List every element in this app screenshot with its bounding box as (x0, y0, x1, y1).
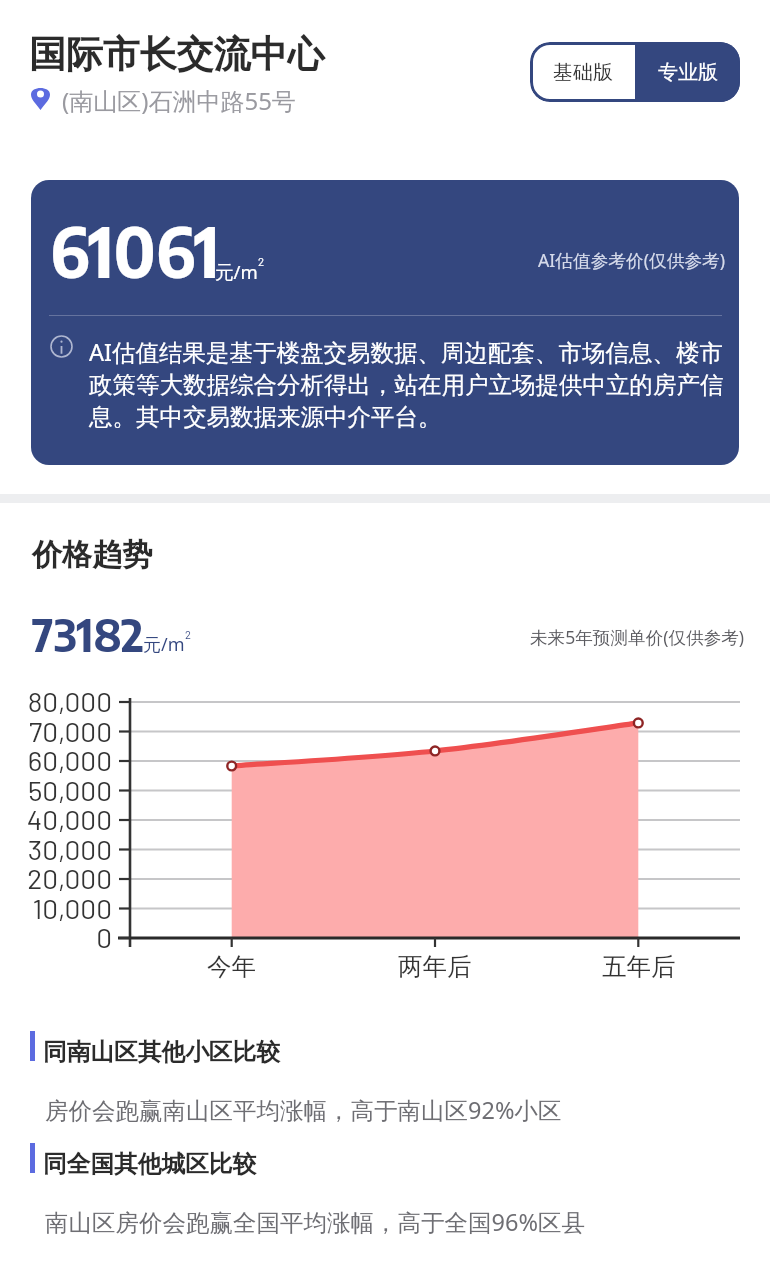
staticText: 未来5年预测单价(仅供参考) (530, 625, 745, 649)
staticText: 80,000 (0, 684, 112, 718)
staticText: 基础版 (553, 60, 613, 85)
staticText: 70,000 (0, 714, 112, 748)
staticText: 同全国其他城区比较 (43, 1149, 257, 1179)
staticText: 2 (258, 255, 265, 269)
staticText: 元/m (215, 259, 258, 284)
staticText: 40,000 (0, 802, 112, 836)
staticText: 10,000 (0, 891, 112, 925)
staticText: 价格趋势 (32, 536, 152, 574)
staticText: 南山区房价会跑赢全国平均涨幅，高于全国96%区县 (45, 1206, 585, 1238)
staticText: 60,000 (0, 743, 112, 777)
staticText: AI估值参考价(仅供参考) (538, 248, 726, 272)
staticText: 五年后 (602, 951, 676, 982)
staticText: 两年后 (398, 951, 472, 982)
staticText: AI估值结果是基于楼盘交易数据、周边配套、市场信息、楼市政策等大数据综合分析得出… (89, 336, 739, 432)
staticText: 20,000 (0, 861, 112, 895)
staticText: 元/m (143, 632, 185, 657)
button[interactable]: 专业版 (635, 42, 740, 102)
staticText: 61061 (50, 208, 220, 292)
staticText: 50,000 (0, 773, 112, 807)
staticText: 同南山区其他小区比较 (43, 1037, 280, 1067)
staticText: 房价会跑赢南山区平均涨幅，高于南山区92%小区 (45, 1094, 562, 1126)
staticText: 30,000 (0, 832, 112, 866)
staticText: 今年 (207, 951, 256, 982)
staticText: 国际市长交流中心 (29, 31, 325, 77)
staticText: 0 (0, 920, 112, 954)
staticText: 73182 (32, 606, 144, 662)
staticText: 2 (185, 628, 191, 641)
button[interactable]: 基础版 (530, 42, 635, 102)
staticText: (南山区)石洲中路55号 (62, 84, 296, 117)
other: Location (31, 85, 50, 110)
staticText: 专业版 (658, 60, 718, 85)
